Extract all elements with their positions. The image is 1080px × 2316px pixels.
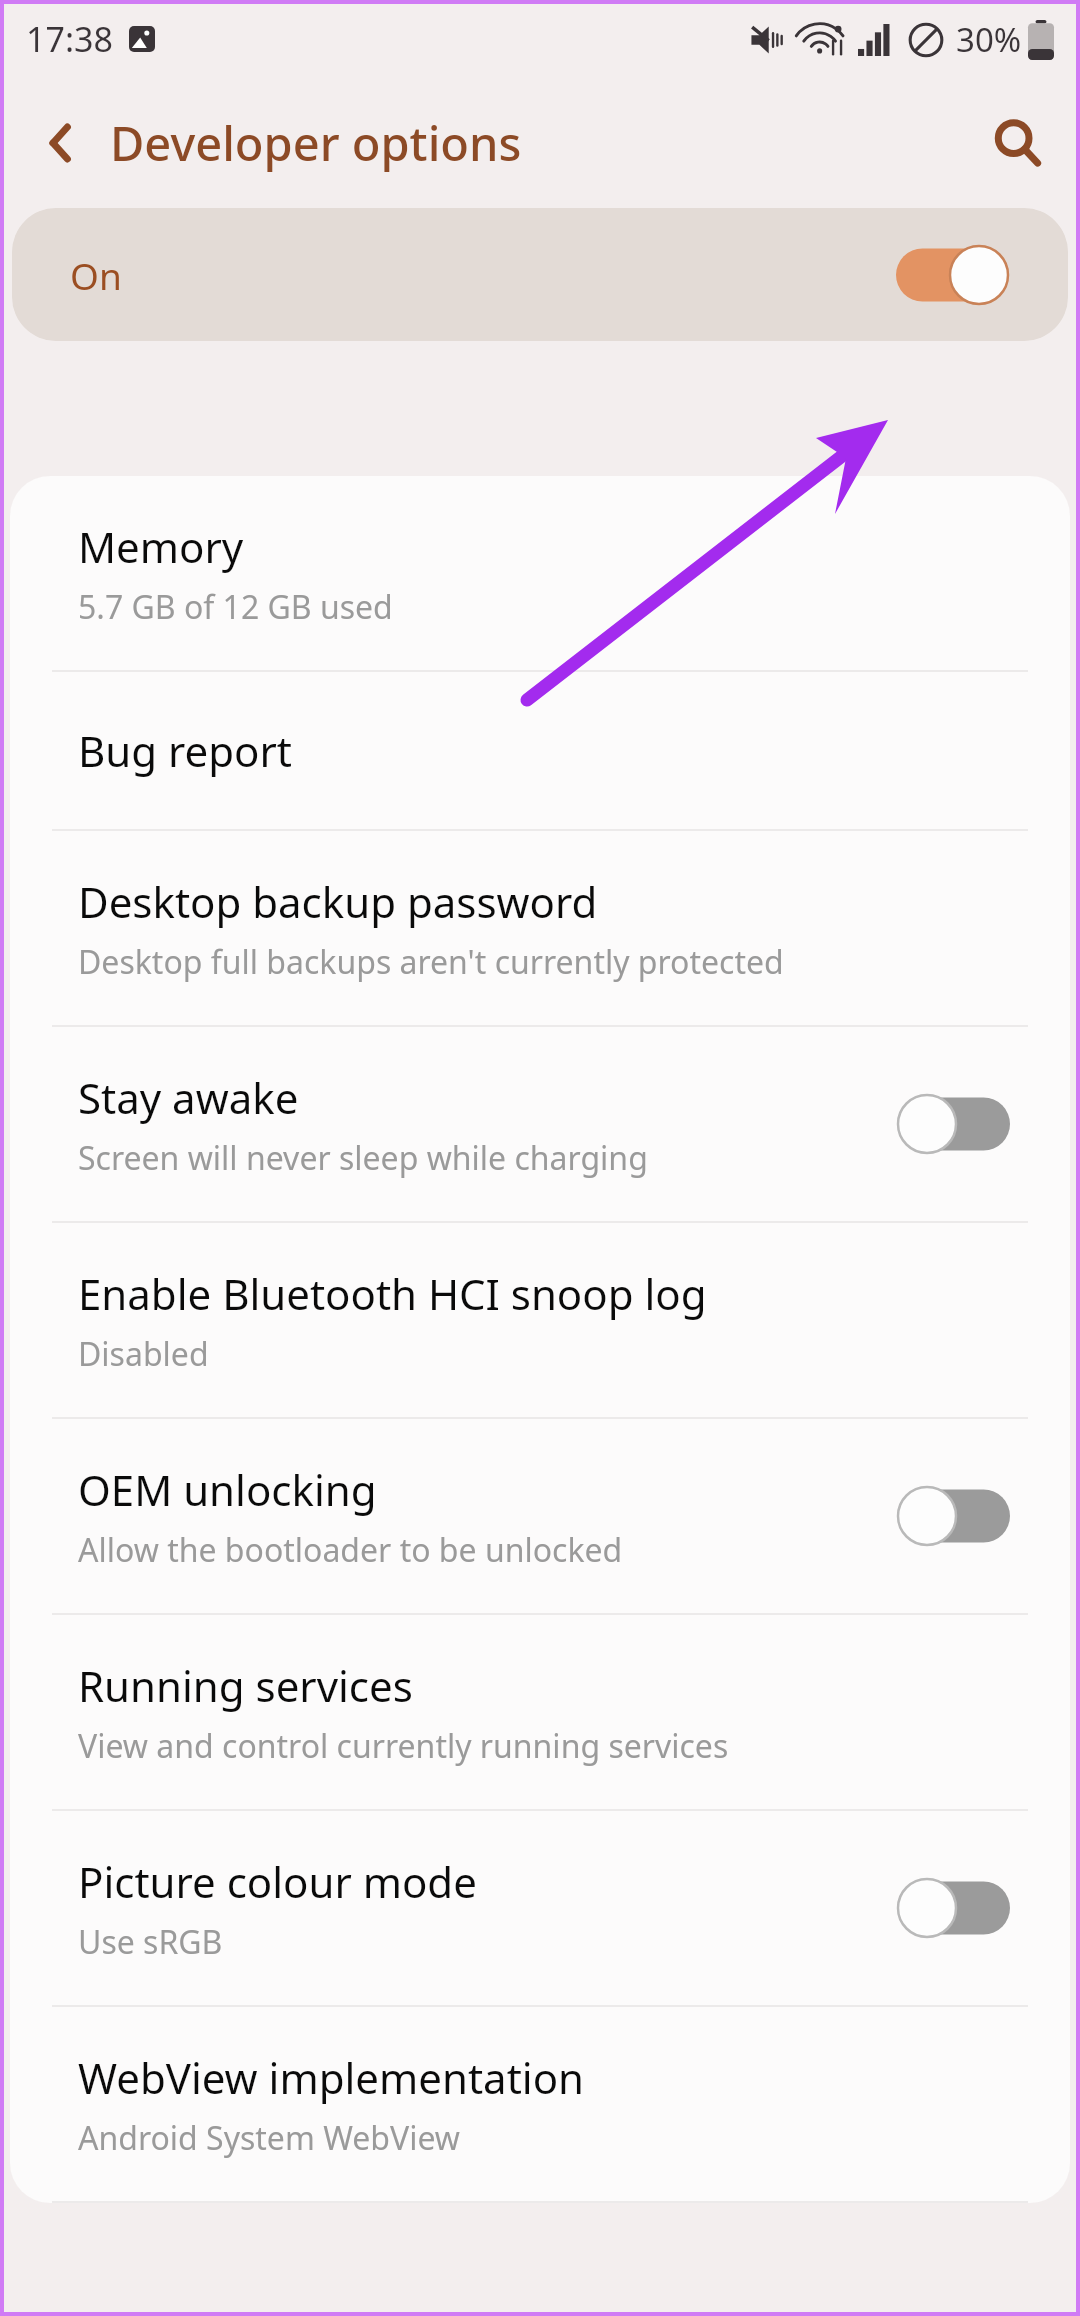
staticText: Enable Bluetooth HCI snoop log bbox=[78, 1265, 707, 1322]
staticText: Desktop backup password bbox=[78, 873, 598, 930]
staticText: Desktop full backups aren't currently pr… bbox=[78, 940, 784, 984]
staticText: Android System WebView bbox=[78, 2116, 461, 2160]
staticText: 5.7 GB of 12 GB used bbox=[78, 585, 393, 629]
button[interactable]: Bug report bbox=[10, 672, 1070, 829]
button[interactable]: Running services bbox=[10, 1615, 1070, 1809]
staticText: 17:38 bbox=[26, 16, 113, 62]
staticText: View and control currently running servi… bbox=[78, 1724, 729, 1768]
button[interactable]: Toggle on bbox=[896, 246, 1008, 304]
staticText: Developer options bbox=[110, 111, 522, 175]
button[interactable]: WebView implementation bbox=[10, 2007, 1070, 2201]
button[interactable]: Memory bbox=[10, 476, 1070, 670]
staticText: Screen will never sleep while charging bbox=[78, 1136, 648, 1180]
button[interactable]: Enable Bluetooth HCI snoop log bbox=[10, 1223, 1070, 1417]
staticText: On bbox=[70, 250, 122, 300]
staticText: Bug report bbox=[78, 722, 292, 779]
button[interactable]: Stay awake bbox=[10, 1027, 1070, 1221]
button[interactable]: Toggle off bbox=[898, 1487, 1010, 1545]
button[interactable]: Search bbox=[982, 108, 1052, 178]
staticText: Disabled bbox=[78, 1332, 209, 1376]
staticText: Memory bbox=[78, 518, 244, 575]
button[interactable]: Picture colour mode bbox=[10, 1811, 1070, 2005]
button[interactable]: On bbox=[12, 208, 1068, 341]
staticText: Picture colour mode bbox=[78, 1853, 477, 1910]
button[interactable]: OEM unlocking bbox=[10, 1419, 1070, 1613]
staticText: OEM unlocking bbox=[78, 1461, 377, 1518]
staticText: Stay awake bbox=[78, 1069, 299, 1126]
button[interactable]: Back bbox=[30, 112, 92, 174]
staticText: Allow the bootloader to be unlocked bbox=[78, 1528, 623, 1572]
staticText: Running services bbox=[78, 1657, 413, 1714]
staticText: Use sRGB bbox=[78, 1920, 223, 1964]
button[interactable]: Toggle off bbox=[898, 1095, 1010, 1153]
staticText: WebView implementation bbox=[78, 2049, 585, 2106]
button[interactable]: Desktop backup password bbox=[10, 831, 1070, 1025]
button[interactable]: Toggle off bbox=[898, 1879, 1010, 1937]
staticText: 30% bbox=[956, 17, 1022, 62]
